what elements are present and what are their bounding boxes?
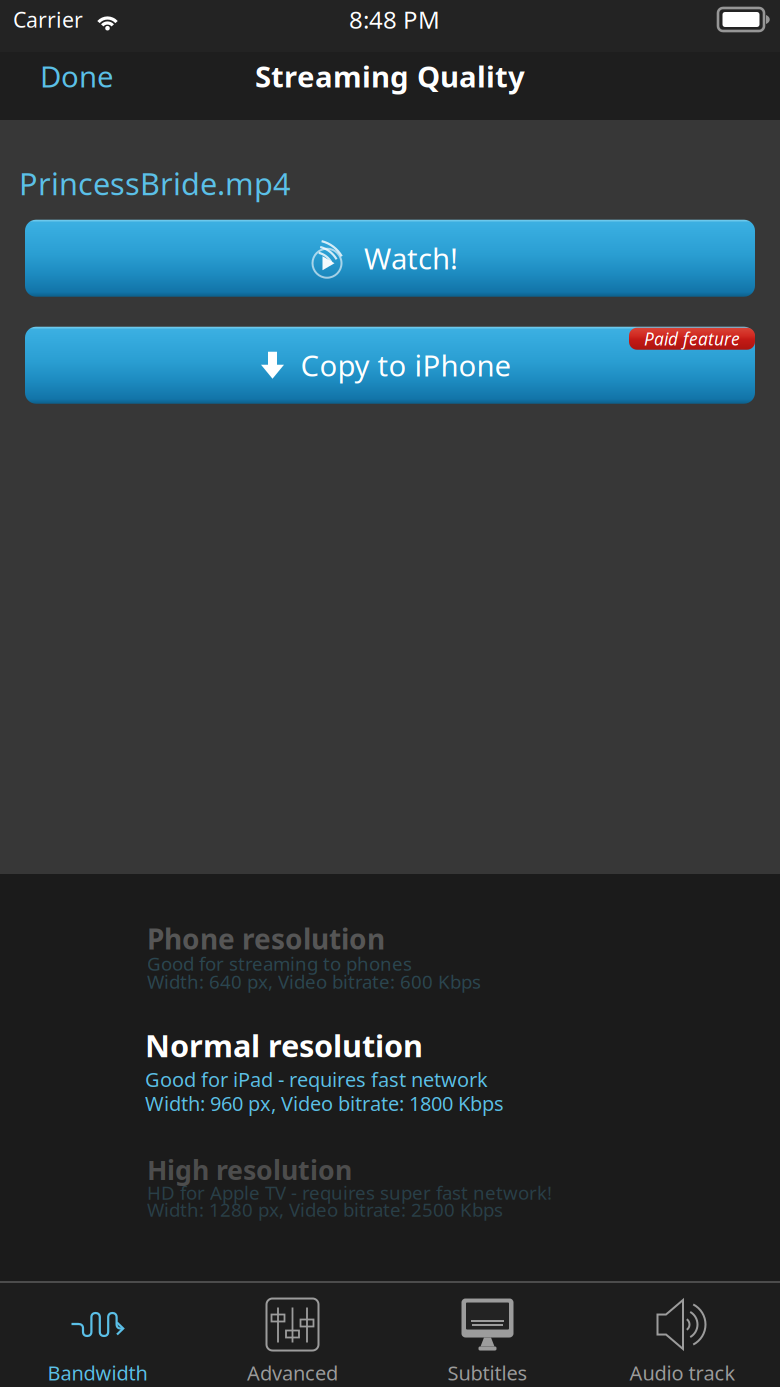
staticText: PrincessBride.mp4 xyxy=(19,163,291,204)
staticText: Streaming Quality xyxy=(255,56,525,95)
button[interactable]: Advanced xyxy=(195,1282,390,1387)
staticText: HD for Apple TV - requires super fast ne… xyxy=(147,1180,552,1205)
staticText: Bandwidth xyxy=(47,1359,147,1386)
staticText: Done xyxy=(40,56,114,95)
staticText: Phone resolution xyxy=(147,920,385,957)
button[interactable]: Watch! xyxy=(25,220,755,297)
staticText: High resolution xyxy=(147,1152,352,1187)
staticText: Advanced xyxy=(247,1359,338,1386)
button[interactable]: Audio track xyxy=(585,1282,780,1387)
button[interactable]: Bandwidth xyxy=(0,1282,195,1387)
staticText: Good for iPad - requires fast network xyxy=(145,1066,488,1093)
staticText: Width: 960 px, Video bitrate: 1800 Kbps xyxy=(145,1090,504,1117)
button[interactable]: Copy to iPhone xyxy=(25,327,755,404)
button[interactable]: Subtitles xyxy=(390,1282,585,1387)
staticText: 8:48 PM xyxy=(349,4,440,35)
staticText: Copy to iPhone xyxy=(300,346,511,385)
staticText: Width: 1280 px, Video bitrate: 2500 Kbps xyxy=(147,1197,503,1222)
button[interactable]: Done xyxy=(22,44,132,107)
staticText: Subtitles xyxy=(447,1359,527,1386)
staticText: Audio track xyxy=(629,1359,735,1386)
staticText: Normal resolution xyxy=(145,1025,423,1066)
staticText: Carrier xyxy=(13,5,83,34)
staticText: Good for streaming to phones xyxy=(147,951,412,976)
staticText: Watch! xyxy=(364,239,458,278)
staticText: Paid feature xyxy=(644,327,740,350)
staticText: Width: 640 px, Video bitrate: 600 Kbps xyxy=(147,969,481,994)
